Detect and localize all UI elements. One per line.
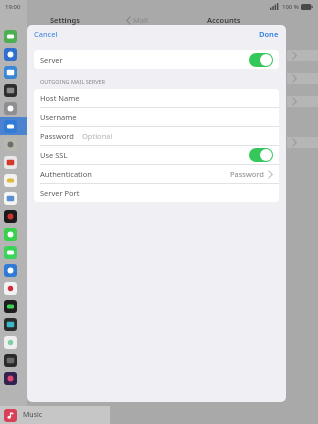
button[interactable] [0, 297, 27, 315]
staticText: Server Port [40, 188, 80, 198]
button[interactable] [249, 148, 273, 162]
button[interactable] [0, 45, 27, 63]
button[interactable]: Mail [126, 15, 148, 25]
button[interactable] [0, 27, 27, 45]
button[interactable]: Server [34, 50, 279, 69]
staticText: Done [259, 29, 279, 39]
button[interactable] [0, 333, 27, 351]
staticText: OUTGOING MAIL SERVER [40, 78, 105, 85]
button[interactable]: Done [257, 27, 281, 41]
button[interactable]: Music [0, 406, 110, 424]
button[interactable] [0, 63, 27, 81]
button[interactable] [0, 171, 27, 189]
staticText: Use SSL [40, 150, 68, 160]
button[interactable]: Host Name [34, 89, 279, 108]
staticText: Settings [50, 15, 80, 25]
button[interactable] [0, 351, 27, 369]
staticText: Music [23, 410, 43, 420]
staticText: Password [40, 131, 74, 141]
staticText: Server [40, 55, 63, 65]
staticText: Cancel [34, 29, 58, 39]
staticText: Host Name [40, 93, 80, 103]
button[interactable] [0, 225, 27, 243]
button[interactable] [0, 279, 27, 297]
staticText: 19:00 [5, 3, 21, 11]
button[interactable] [0, 153, 27, 171]
button[interactable] [0, 315, 27, 333]
button[interactable] [0, 81, 27, 99]
staticText: Optional [82, 131, 113, 141]
button[interactable] [0, 243, 27, 261]
button[interactable] [0, 135, 27, 153]
button[interactable]: Use SSL [34, 146, 279, 165]
button[interactable] [0, 117, 27, 135]
button[interactable]: Server Port [34, 184, 279, 202]
button[interactable]: Authentication [34, 165, 279, 184]
button[interactable]: Username [34, 108, 279, 127]
staticText: Username [40, 112, 77, 122]
button[interactable] [0, 207, 27, 225]
button[interactable] [0, 99, 27, 117]
staticText: Password [230, 169, 264, 179]
button[interactable]: Password [34, 127, 279, 146]
button[interactable] [0, 261, 27, 279]
staticText: Authentication [40, 169, 92, 179]
button[interactable] [249, 53, 273, 67]
staticText: Mail [133, 15, 148, 25]
button[interactable]: Cancel [32, 27, 60, 41]
staticText: Accounts [207, 15, 241, 25]
button[interactable] [0, 369, 27, 387]
button[interactable] [0, 189, 27, 207]
staticText: 100 % [282, 3, 299, 11]
